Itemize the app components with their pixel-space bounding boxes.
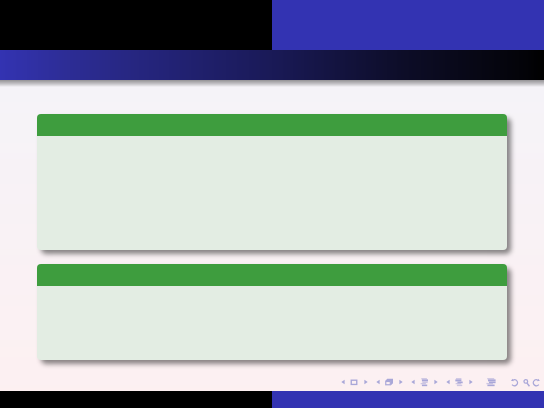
button[interactable]: Forward [531, 375, 542, 389]
button[interactable]: Subsection navigation [408, 375, 443, 389]
button[interactable]: Frame navigation [373, 375, 408, 389]
button[interactable]: First block [37, 114, 507, 250]
button[interactable]: Section navigation [443, 375, 478, 389]
button[interactable]: Presentation navigation [484, 375, 498, 389]
button[interactable]: Search [522, 375, 530, 389]
button[interactable]: Second block [37, 264, 507, 360]
button[interactable]: Subsection bar [0, 50, 544, 80]
button[interactable]: Slide navigation [338, 375, 373, 389]
button[interactable]: Back [509, 375, 520, 389]
